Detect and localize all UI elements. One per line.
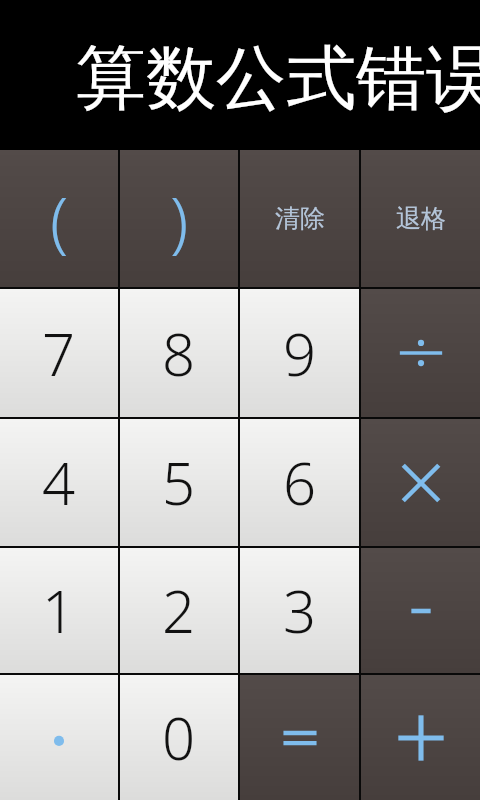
staticText: 3 (283, 571, 317, 650)
button[interactable]: ) (120, 150, 238, 287)
button[interactable]: 5 (120, 419, 238, 546)
button[interactable]: Plus (361, 675, 480, 800)
button[interactable]: 7 (0, 289, 118, 417)
staticText: 6 (283, 443, 317, 522)
button[interactable]: 清除 (240, 150, 359, 287)
staticText: 9 (283, 314, 317, 393)
staticText: 7 (42, 314, 76, 393)
staticText: 8 (162, 314, 196, 393)
staticText: 算数公式错误 (76, 35, 480, 123)
staticText: ) (170, 174, 189, 264)
staticText: 退格 (396, 203, 446, 234)
button[interactable]: 4 (0, 419, 118, 546)
button[interactable]: 退格 (361, 150, 480, 287)
button[interactable]: 8 (120, 289, 238, 417)
button[interactable]: Divide (361, 289, 480, 417)
staticText: 5 (162, 443, 196, 522)
button[interactable]: Decimal point (0, 675, 118, 800)
staticText: ( (50, 174, 69, 264)
staticText: 0 (162, 698, 196, 777)
button[interactable]: 3 (240, 548, 359, 673)
button[interactable]: 2 (120, 548, 238, 673)
button[interactable]: ( (0, 150, 118, 287)
button[interactable]: 1 (0, 548, 118, 673)
staticText: 4 (42, 443, 76, 522)
staticText: 2 (162, 571, 196, 650)
button[interactable]: Equals (240, 675, 359, 800)
button[interactable]: 6 (240, 419, 359, 546)
button[interactable]: 9 (240, 289, 359, 417)
button[interactable]: Minus (361, 548, 480, 673)
button[interactable]: 0 (120, 675, 238, 800)
button[interactable]: Multiply (361, 419, 480, 546)
staticText: 1 (42, 571, 76, 650)
staticText: 清除 (275, 203, 325, 234)
